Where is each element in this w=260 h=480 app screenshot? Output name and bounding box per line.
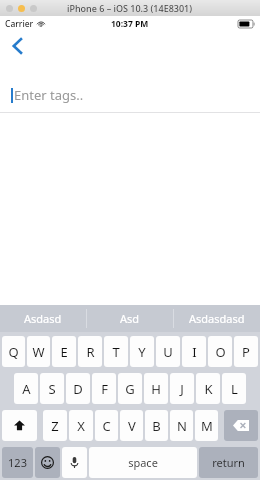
button[interactable]: W xyxy=(27,336,50,367)
staticText: U xyxy=(163,343,173,361)
staticText: Asdasd xyxy=(24,311,62,326)
staticText: H xyxy=(151,380,161,398)
staticText: T xyxy=(112,343,120,361)
staticText: I xyxy=(192,343,197,361)
staticText: return xyxy=(212,455,245,470)
button[interactable]: Q xyxy=(2,336,25,367)
button[interactable]: S xyxy=(40,373,64,404)
staticText: 10:37 PM xyxy=(111,18,149,30)
button[interactable]: G xyxy=(118,373,142,404)
staticText: Q xyxy=(8,343,19,361)
button[interactable]: Asd xyxy=(87,305,173,332)
staticText: 123 xyxy=(8,455,27,470)
button[interactable]: M xyxy=(195,410,218,441)
button[interactable]: Y xyxy=(130,336,154,367)
button[interactable]: B xyxy=(145,410,168,441)
staticText: C xyxy=(102,417,111,435)
staticText: Y xyxy=(138,343,146,361)
button[interactable]: Backspace xyxy=(224,410,258,441)
staticText: N xyxy=(177,417,187,435)
staticText: E xyxy=(60,343,68,361)
button[interactable]: space xyxy=(89,447,197,478)
button[interactable]: T xyxy=(104,336,128,367)
staticText: F xyxy=(101,380,108,398)
staticText: K xyxy=(204,380,213,398)
button[interactable]: A xyxy=(14,373,38,404)
staticText: M xyxy=(201,417,213,435)
staticText: W xyxy=(32,343,45,361)
staticText: Asd xyxy=(120,311,140,326)
button[interactable]: D xyxy=(66,373,90,404)
staticText: S xyxy=(48,380,56,398)
staticText: space xyxy=(128,455,158,470)
button[interactable]: R xyxy=(78,336,102,367)
button[interactable]: return xyxy=(199,447,258,478)
button[interactable]: Shift xyxy=(2,410,37,441)
staticText: O xyxy=(215,343,226,361)
button[interactable]: X xyxy=(69,410,93,441)
button[interactable]: H xyxy=(144,373,168,404)
button[interactable]: Enter tags.. xyxy=(0,82,260,108)
button[interactable]: Asdasdasd xyxy=(174,305,260,332)
staticText: X xyxy=(77,417,85,435)
button[interactable]: Asdasd xyxy=(0,305,86,332)
button[interactable]: I xyxy=(182,336,206,367)
button[interactable]: Z xyxy=(43,410,67,441)
staticText: L xyxy=(231,380,238,398)
button[interactable]: V xyxy=(120,410,143,441)
button[interactable]: N xyxy=(170,410,193,441)
button[interactable]: L xyxy=(222,373,246,404)
staticText: Z xyxy=(51,417,59,435)
staticText: B xyxy=(152,417,161,435)
staticText: A xyxy=(22,380,31,398)
button[interactable]: U xyxy=(156,336,180,367)
button[interactable] xyxy=(6,5,13,12)
button[interactable] xyxy=(30,5,37,12)
button[interactable] xyxy=(18,5,25,12)
staticText: R xyxy=(86,343,95,361)
staticText: G xyxy=(125,380,135,398)
staticText: V xyxy=(128,417,136,435)
staticText: Asdasdasd xyxy=(189,311,245,326)
staticText: J xyxy=(180,380,184,398)
button[interactable]: C xyxy=(95,410,118,441)
button[interactable]: Back xyxy=(0,32,34,60)
staticText: Carrier xyxy=(5,18,34,30)
button[interactable]: Emoji xyxy=(35,447,60,478)
staticText: Enter tags.. xyxy=(14,86,84,104)
button[interactable]: Dictation xyxy=(62,447,87,478)
staticText: P xyxy=(242,343,250,361)
button[interactable]: P xyxy=(234,336,258,367)
button[interactable]: 123 xyxy=(2,447,33,478)
button[interactable]: J xyxy=(170,373,194,404)
button[interactable]: O xyxy=(208,336,232,367)
button[interactable]: F xyxy=(92,373,116,404)
button[interactable]: E xyxy=(52,336,76,367)
button[interactable]: K xyxy=(196,373,220,404)
staticText: iPhone 6 – iOS 10.3 (14E8301) xyxy=(67,2,193,14)
staticText: D xyxy=(73,380,83,398)
